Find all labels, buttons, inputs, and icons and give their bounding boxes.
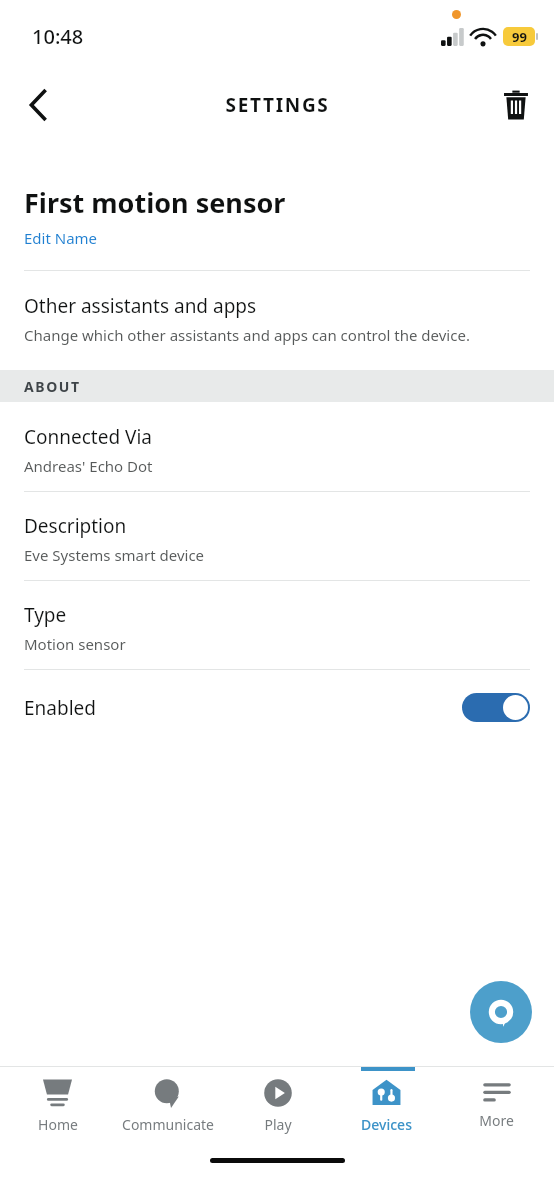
button[interactable]: More [444,1067,549,1130]
button[interactable]: Home [5,1067,110,1134]
staticText: Type [24,602,67,628]
button[interactable]: Back [14,81,62,129]
staticText: More [479,1111,514,1130]
button[interactable]: Other assistants and apps [0,293,554,345]
staticText: Description [24,513,127,539]
staticText: Change which other assistants and apps c… [24,325,470,345]
staticText: Communicate [122,1115,214,1134]
staticText: SETTINGS [225,92,330,118]
staticText: Motion sensor [24,634,126,654]
button[interactable]: Enabled [0,687,554,728]
button[interactable]: Devices [334,1067,439,1134]
staticText: Eve Systems smart device [24,545,205,565]
staticText: 10:48 [32,23,84,50]
staticText: 99 [512,28,527,46]
staticText: Andreas' Echo Dot [24,456,153,476]
button[interactable]: Delete device [492,81,540,129]
staticText: Other assistants and apps [24,293,257,319]
staticText: Devices [361,1115,412,1134]
button[interactable]: Play [225,1067,330,1134]
staticText: Play [264,1115,292,1134]
staticText: Home [38,1115,78,1134]
button[interactable]: Edit Name [24,228,98,248]
staticText: ABOUT [24,377,81,396]
button[interactable]: Talk to Alexa [470,981,532,1043]
staticText: First motion sensor [24,184,286,221]
staticText: Edit Name [24,228,98,248]
button[interactable]: Communicate [115,1067,220,1134]
button[interactable]: Enabled toggle [462,693,530,722]
staticText: Connected Via [24,424,152,450]
staticText: Enabled [24,695,462,721]
